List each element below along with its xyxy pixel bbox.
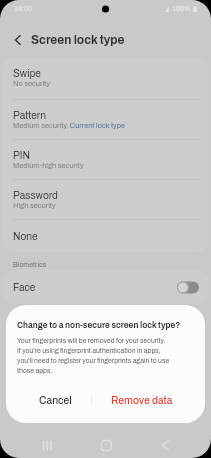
staticText: Pattern [13,110,46,121]
staticText: Medium security, Current lock type [13,122,126,130]
staticText: 100% [172,5,191,13]
button[interactable]: Navigate up [9,31,27,49]
staticText: Your fingerprints will be removed for yo… [17,337,170,374]
staticText: Remove data [111,395,173,406]
staticText: Screen lock type [31,34,125,47]
button[interactable]: Password [2,180,209,219]
staticText: Face [13,282,36,293]
staticText: PIN [13,150,30,161]
button[interactable]: PIN [2,140,209,179]
button[interactable]: Face [2,270,209,304]
staticText: Cancel [39,395,72,406]
staticText: Swipe [13,68,41,79]
button[interactable]: Pattern [2,100,209,139]
staticText: Change to a non-secure screen lock type? [17,321,181,330]
button[interactable]: Remove data [92,385,205,415]
button[interactable]: Swipe [2,57,209,99]
staticText: None [13,231,38,242]
staticText: Medium-high security [13,162,84,170]
button[interactable]: Home [88,430,124,458]
button[interactable]: Cancel [6,385,91,415]
button[interactable]: None [2,220,209,252]
staticText: Biometrics [13,261,47,268]
button[interactable]: Recents [29,430,65,458]
button[interactable]: Face unlock toggle [177,280,200,294]
staticText: No security [13,80,51,88]
staticText: High security [13,202,56,210]
staticText: 10:00 [14,5,33,13]
staticText: Password [13,190,58,201]
